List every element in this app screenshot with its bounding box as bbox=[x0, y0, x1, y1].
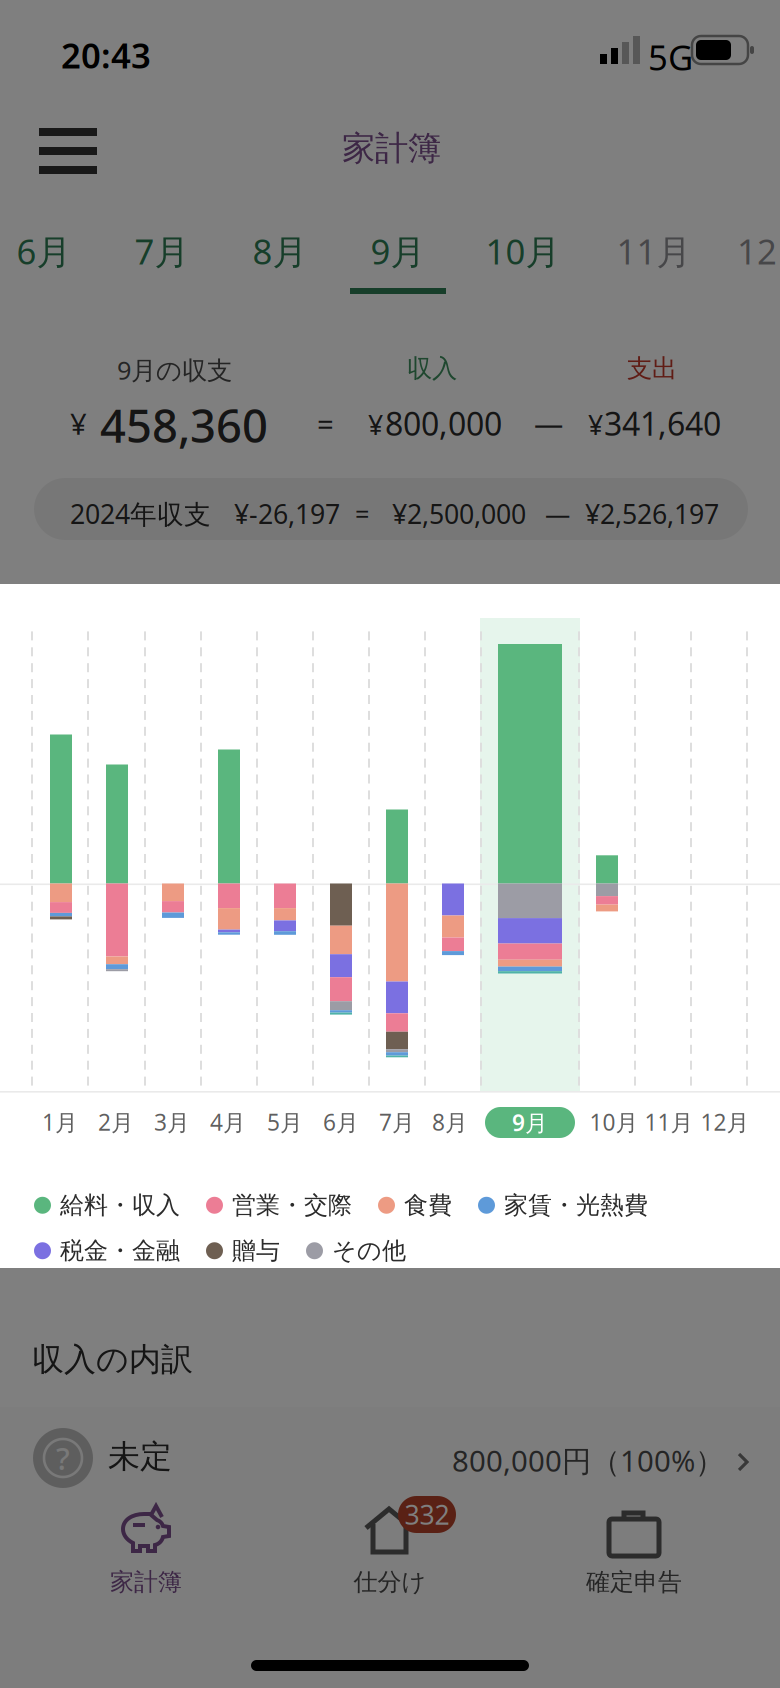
staticText: 458,360 bbox=[100, 395, 268, 455]
staticText: 収入の内訳 bbox=[32, 1340, 193, 1379]
button[interactable]: 2月 bbox=[85, 1102, 147, 1142]
staticText: 営業・交際 bbox=[232, 1190, 352, 1220]
staticText: = bbox=[317, 404, 334, 443]
staticText: 9月 bbox=[370, 228, 425, 274]
staticText: 1月 bbox=[42, 1107, 78, 1137]
staticText: 給料・収入 bbox=[60, 1190, 180, 1220]
button[interactable]: 家計簿 bbox=[56, 1496, 236, 1626]
button[interactable]: 8月 bbox=[419, 1102, 481, 1142]
staticText: 11月 bbox=[644, 1107, 693, 1137]
staticText: 5G bbox=[648, 34, 693, 80]
button[interactable]: 5月 bbox=[254, 1102, 316, 1142]
staticText: 家計簿 bbox=[110, 1567, 182, 1597]
staticText: ¥ bbox=[588, 407, 603, 442]
staticText: その他 bbox=[332, 1236, 406, 1265]
button[interactable]: 9月 bbox=[485, 1107, 575, 1138]
staticText: 12 bbox=[737, 228, 777, 274]
button[interactable]: 12月 bbox=[689, 1102, 761, 1142]
staticText: 11月 bbox=[616, 228, 691, 274]
staticText: ¥ bbox=[70, 404, 87, 443]
staticText: 2024年収支 bbox=[70, 496, 211, 531]
staticText: 5月 bbox=[267, 1107, 303, 1137]
staticText: 7月 bbox=[379, 1107, 415, 1137]
staticText: — bbox=[545, 497, 570, 531]
button[interactable]: 10月 bbox=[578, 1102, 650, 1142]
staticText: = bbox=[355, 497, 369, 531]
staticText: 税金・金融 bbox=[60, 1236, 180, 1265]
button[interactable]: 7月 bbox=[366, 1102, 428, 1142]
button[interactable]: 12 bbox=[719, 204, 780, 308]
staticText: 800,000円（100%） bbox=[452, 1441, 724, 1480]
staticText: 収入 bbox=[407, 353, 457, 384]
staticText: 12月 bbox=[700, 1107, 749, 1137]
staticText: 9月の収支 bbox=[117, 353, 232, 387]
button[interactable]: ? bbox=[0, 1407, 780, 1501]
staticText: 食費 bbox=[404, 1190, 452, 1220]
staticText: 贈与 bbox=[232, 1236, 280, 1265]
button[interactable]: 3月 bbox=[141, 1102, 203, 1142]
staticText: 仕分け bbox=[353, 1567, 426, 1597]
staticText: 4月 bbox=[210, 1107, 246, 1137]
staticText: 未定 bbox=[108, 1437, 172, 1476]
button[interactable]: 1月 bbox=[29, 1102, 91, 1142]
staticText: 332 bbox=[404, 1497, 449, 1532]
staticText: 8月 bbox=[252, 228, 307, 274]
button[interactable]: 11月 bbox=[589, 204, 719, 308]
staticText: ¥-26,197 bbox=[234, 496, 340, 531]
button[interactable]: 6月 bbox=[0, 204, 103, 308]
staticText: 家賃・光熱費 bbox=[504, 1190, 648, 1220]
staticText: 3月 bbox=[154, 1107, 190, 1137]
button[interactable]: 4月 bbox=[197, 1102, 259, 1142]
staticText: ? bbox=[56, 1438, 70, 1478]
button[interactable]: 6月 bbox=[310, 1102, 372, 1142]
staticText: 6月 bbox=[323, 1107, 359, 1137]
staticText: 8月 bbox=[432, 1107, 468, 1137]
button[interactable]: Menu bbox=[30, 120, 106, 182]
button[interactable]: 332 bbox=[300, 1496, 480, 1626]
button[interactable]: 10月 bbox=[457, 204, 589, 308]
staticText: 確定申告 bbox=[586, 1567, 682, 1597]
staticText: 2月 bbox=[98, 1107, 134, 1137]
staticText: 9月 bbox=[512, 1107, 548, 1137]
staticText: ¥2,526,197 bbox=[585, 496, 719, 531]
staticText: 家計簿 bbox=[342, 128, 441, 169]
staticText: 7月 bbox=[134, 228, 189, 274]
button[interactable]: 8月 bbox=[221, 204, 339, 308]
button[interactable]: 7月 bbox=[103, 204, 221, 308]
button[interactable]: 9月 bbox=[339, 204, 457, 308]
staticText: 800,000 bbox=[385, 402, 502, 444]
staticText: 10月 bbox=[485, 228, 560, 274]
staticText: 6月 bbox=[16, 228, 71, 274]
staticText: — bbox=[534, 404, 563, 443]
staticText: 支出 bbox=[627, 353, 677, 384]
staticText: ¥2,500,000 bbox=[392, 496, 526, 531]
staticText: 20:43 bbox=[61, 32, 151, 78]
staticText: 10月 bbox=[589, 1107, 638, 1137]
staticText: ¥ bbox=[368, 407, 383, 442]
staticText: 341,640 bbox=[604, 402, 721, 444]
button[interactable]: 11月 bbox=[633, 1102, 705, 1142]
button[interactable]: 確定申告 bbox=[544, 1496, 724, 1626]
